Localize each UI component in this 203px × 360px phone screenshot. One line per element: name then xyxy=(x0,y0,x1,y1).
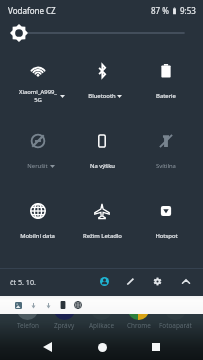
button[interactable]: Aplikace xyxy=(83,299,120,330)
staticText: Vodafone CZ xyxy=(8,5,56,16)
staticText: Hotspot xyxy=(155,232,178,240)
button[interactable]: Upravit xyxy=(122,273,139,290)
button[interactable]: Sbalit xyxy=(177,273,194,290)
button[interactable]: Nastavení xyxy=(149,273,166,290)
button[interactable]: Přehled xyxy=(145,336,167,358)
staticText: Xiaomi_A999_ xyxy=(19,88,57,96)
staticText: 5G xyxy=(34,96,42,104)
button[interactable]: Plocha xyxy=(91,336,113,358)
staticText: Na výšku xyxy=(90,162,115,170)
staticText: Baterie xyxy=(156,92,176,100)
staticText: 9:53 xyxy=(180,5,196,16)
staticText: Fotoaparát xyxy=(159,321,192,330)
staticText: 87 % xyxy=(151,5,169,16)
staticText: Bluetooth xyxy=(88,92,116,100)
staticText: čt 5. 10. xyxy=(10,277,36,287)
button[interactable]: Uživatel xyxy=(96,273,113,290)
button[interactable]: Režim Letadlo xyxy=(70,191,134,261)
button[interactable]: Xiaomi_A999_ xyxy=(5,51,70,121)
button[interactable]: Svítilna xyxy=(134,121,198,191)
staticText: Režim Letadlo xyxy=(83,232,122,240)
staticText: Aplikace xyxy=(89,321,114,330)
button[interactable] xyxy=(0,0,203,46)
staticText: Zprávy xyxy=(54,321,75,330)
button[interactable]: Nerušit xyxy=(5,121,70,191)
button[interactable]: Baterie xyxy=(134,51,198,121)
button[interactable]: Bluetooth xyxy=(70,51,134,121)
button[interactable]: Zprávy xyxy=(46,299,83,330)
button[interactable]: Mobilní data xyxy=(5,191,70,261)
button[interactable]: Na výšku xyxy=(70,121,134,191)
staticText: Mobilní data xyxy=(20,232,55,240)
button[interactable]: Fotoaparát xyxy=(157,299,194,330)
button[interactable]: Telefon xyxy=(9,299,46,330)
button[interactable]: Hotspot xyxy=(134,191,198,261)
staticText: Nerušit xyxy=(27,162,48,170)
staticText: Telefon xyxy=(17,321,39,330)
button[interactable]: Zpět xyxy=(36,336,58,358)
staticText: Svítilna xyxy=(156,162,176,170)
staticText: Chrome xyxy=(127,321,151,330)
button[interactable]: Chrome xyxy=(120,299,157,330)
